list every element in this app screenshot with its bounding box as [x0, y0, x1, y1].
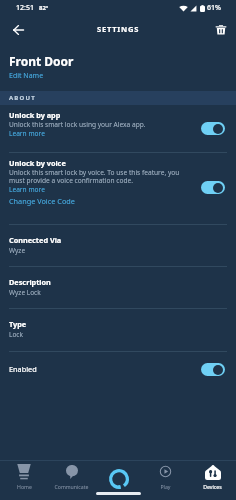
staticText: 12:51: [16, 3, 34, 13]
button[interactable]: [201, 181, 225, 194]
button[interactable]: [201, 363, 225, 376]
staticText: Play: [160, 483, 171, 490]
staticText: Learn more: [9, 185, 45, 194]
staticText: Wyze: [9, 246, 26, 255]
button[interactable]: Connected Via: [0, 225, 236, 266]
staticText: Lock: [9, 330, 23, 339]
staticText: Enabled: [9, 364, 201, 374]
staticText: Unlock this smart lock by voice. To use …: [9, 168, 196, 185]
staticText: Unlock by voice: [9, 158, 66, 168]
button[interactable]: Unlock by voice: [0, 153, 236, 224]
button[interactable]: Delete: [208, 17, 233, 42]
button[interactable]: Edit Name: [9, 71, 44, 81]
staticText: 82°: [39, 4, 49, 12]
staticText: Front Door: [9, 53, 74, 69]
button[interactable]: Description: [0, 267, 236, 308]
button[interactable]: Unlock by app: [0, 105, 236, 152]
staticText: Wyze Lock: [9, 288, 41, 297]
staticText: Type: [9, 319, 27, 329]
staticText: ABOUT: [9, 94, 36, 102]
staticText: Unlock this smart lock using your Alexa …: [9, 120, 146, 129]
staticText: Change Voice Code: [9, 196, 75, 206]
staticText: Devices: [203, 483, 222, 490]
button[interactable]: Home: [0, 460, 48, 492]
button[interactable]: Play: [142, 460, 189, 492]
staticText: Description: [9, 277, 51, 287]
staticText: Communicate: [54, 483, 89, 490]
button[interactable]: Communicate: [48, 460, 95, 492]
staticText: Home: [17, 483, 32, 490]
staticText: 61%: [207, 3, 221, 13]
staticText: Edit Name: [9, 71, 44, 81]
staticText: Unlock by app: [9, 110, 61, 120]
staticText: Learn more: [9, 129, 45, 138]
button[interactable]: Back: [6, 17, 31, 42]
staticText: Connected Via: [9, 235, 62, 245]
button[interactable]: Type: [0, 309, 236, 351]
button[interactable]: [201, 122, 225, 135]
button[interactable]: Devices: [189, 460, 236, 492]
button[interactable]: Alexa: [95, 460, 142, 492]
staticText: SETTINGS: [97, 24, 140, 34]
button[interactable]: Enabled: [0, 352, 236, 386]
